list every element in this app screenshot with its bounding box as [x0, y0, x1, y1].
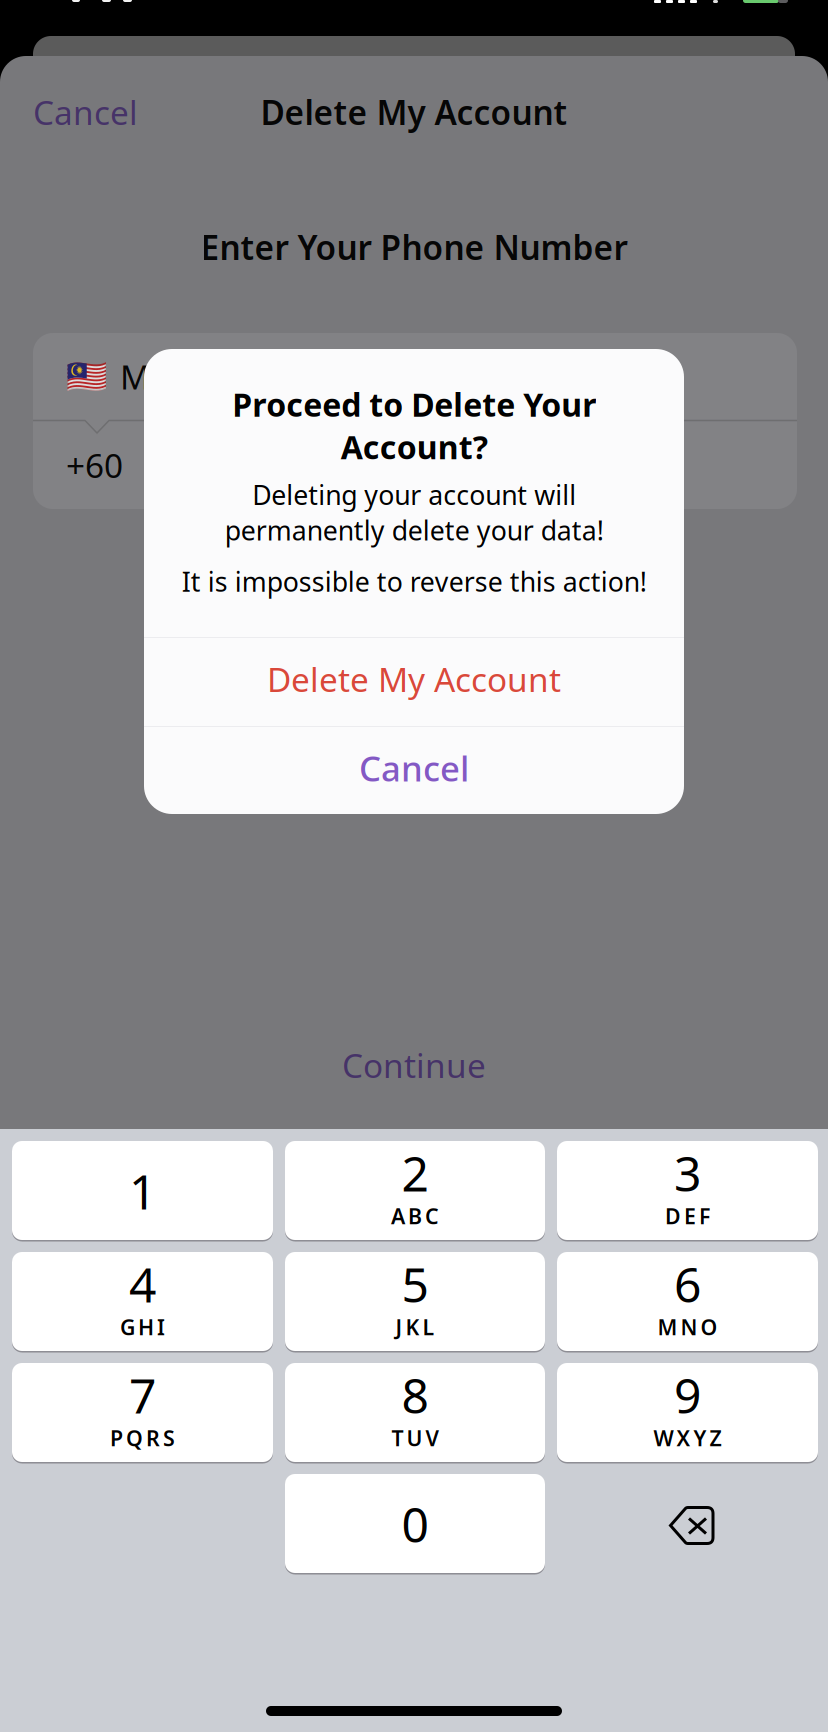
staticText: Malaysia — [120, 354, 258, 399]
staticText: 🇲🇾 — [66, 357, 108, 396]
staticText: Cancel — [359, 745, 469, 791]
button[interactable]: Cancel — [144, 724, 684, 812]
button[interactable]: 4 — [12, 1252, 273, 1351]
staticText: WXYZ — [653, 1424, 721, 1452]
staticText: 4 — [129, 1252, 156, 1316]
button[interactable]: 6 — [557, 1252, 818, 1351]
staticText: 5 — [401, 1252, 428, 1316]
staticText: +60 — [66, 443, 123, 487]
button[interactable]: Cancel — [33, 84, 173, 140]
staticText: DEF — [665, 1202, 710, 1230]
button[interactable]: 7 — [12, 1363, 273, 1462]
staticText: Delete My Account — [267, 657, 561, 701]
staticText: 7 — [129, 1363, 156, 1427]
staticText: 2 — [401, 1141, 428, 1205]
button[interactable]: 5 — [285, 1252, 545, 1351]
staticText: JKL — [395, 1313, 434, 1341]
button[interactable]: Continue — [0, 1041, 828, 1089]
button[interactable]: Delete — [557, 1474, 818, 1573]
staticText: 1 — [129, 1159, 156, 1223]
button[interactable]: 1 — [12, 1141, 273, 1240]
staticText: 3 — [674, 1141, 701, 1205]
button[interactable]: 8 — [285, 1363, 545, 1462]
staticText: Delete My Account — [260, 90, 567, 134]
staticText: Deleting your account will permanently d… — [224, 477, 603, 548]
staticText: 8 — [401, 1363, 428, 1427]
staticText: 0 — [401, 1492, 428, 1556]
staticText: Proceed to Delete Your Account? — [232, 383, 596, 468]
button[interactable]: 3 — [557, 1141, 818, 1240]
button[interactable]: 0 — [285, 1474, 545, 1573]
button[interactable]: 9 — [557, 1363, 818, 1462]
staticText: GHI — [120, 1313, 165, 1341]
staticText: TUV — [391, 1424, 438, 1452]
staticText: ABC — [391, 1202, 439, 1230]
button[interactable]: Delete My Account — [144, 635, 684, 723]
staticText: Continue — [342, 1043, 486, 1087]
staticText: Cancel — [33, 90, 138, 134]
staticText: MNO — [657, 1313, 717, 1341]
staticText: PQRS — [110, 1424, 175, 1452]
button[interactable]: 2 — [285, 1141, 545, 1240]
staticText: It is impossible to reverse this action! — [181, 564, 646, 599]
button[interactable]: 🇲🇾 — [33, 333, 797, 420]
staticText: Enter Your Phone Number — [200, 225, 627, 269]
staticText: 9 — [674, 1363, 701, 1427]
staticText: 6 — [674, 1252, 701, 1316]
